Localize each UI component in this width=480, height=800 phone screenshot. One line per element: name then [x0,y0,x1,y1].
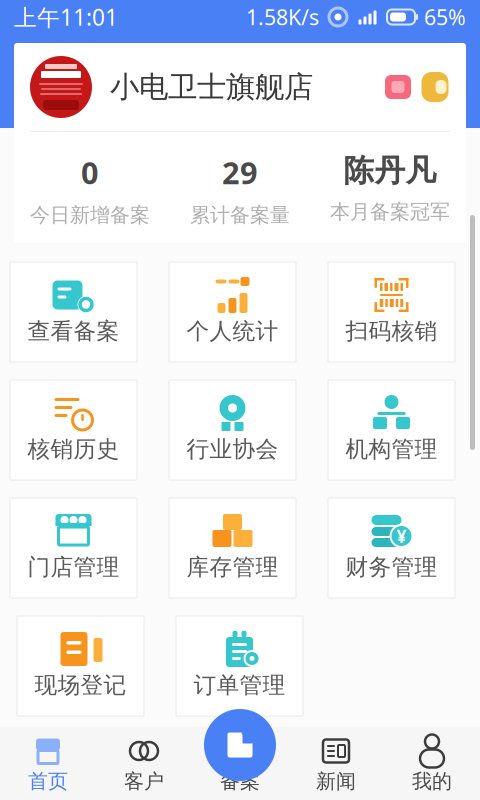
staticText: 新闻 [316,769,356,794]
button[interactable]: 查看备案 [10,262,137,362]
staticText: ¥ [396,524,406,547]
button[interactable]: 门店管理 [10,498,137,598]
staticText: 行业协会 [186,435,278,463]
staticText: 首页 [28,769,68,794]
button[interactable]: 行业协会 [169,380,296,480]
staticText: 客户 [124,769,164,794]
button[interactable]: 新建备案 [204,709,276,781]
staticText: 核销历史 [27,435,119,463]
button[interactable]: 首页 [0,727,96,800]
staticText: 1.58K/s [246,3,319,31]
staticText: 29 [222,152,258,193]
button[interactable]: 库存管理 [169,498,296,598]
staticText: 订单管理 [193,671,285,699]
button[interactable]: 扫码核销 [328,262,455,362]
staticText: 库存管理 [186,553,278,581]
button[interactable]: 新闻 [288,727,384,800]
button[interactable]: 备案 [192,727,288,800]
staticText: 备案 [220,769,260,794]
staticText: 个人统计 [186,317,278,345]
staticText: 今日新增备案 [30,203,150,227]
staticText: 本月备案冠军 [330,200,450,224]
staticText: 65% [424,3,466,31]
button[interactable]: ¥ [328,498,455,598]
staticText: 财务管理 [345,553,437,581]
button[interactable]: 我的 [384,727,480,800]
staticText: 我的 [412,769,452,794]
button[interactable]: 现场登记 [17,616,144,716]
staticText: 机构管理 [345,435,437,463]
staticText: 陈丹凡 [343,152,436,190]
button[interactable]: 客户 [96,727,192,800]
button[interactable]: 核销历史 [10,380,137,480]
staticText: 0 [81,152,99,193]
button[interactable]: 订单管理 [176,616,303,716]
button[interactable]: 机构管理 [328,380,455,480]
button[interactable]: 个人统计 [169,262,296,362]
staticText: 查看备案 [27,317,119,345]
staticText: 累计备案量 [190,203,290,227]
staticText: 现场登记 [34,671,126,699]
staticText: 上午11:01 [14,2,118,32]
staticText: 扫码核销 [345,317,437,345]
staticText: 门店管理 [27,553,119,581]
staticText: 小电卫士旗舰店 [110,69,313,105]
